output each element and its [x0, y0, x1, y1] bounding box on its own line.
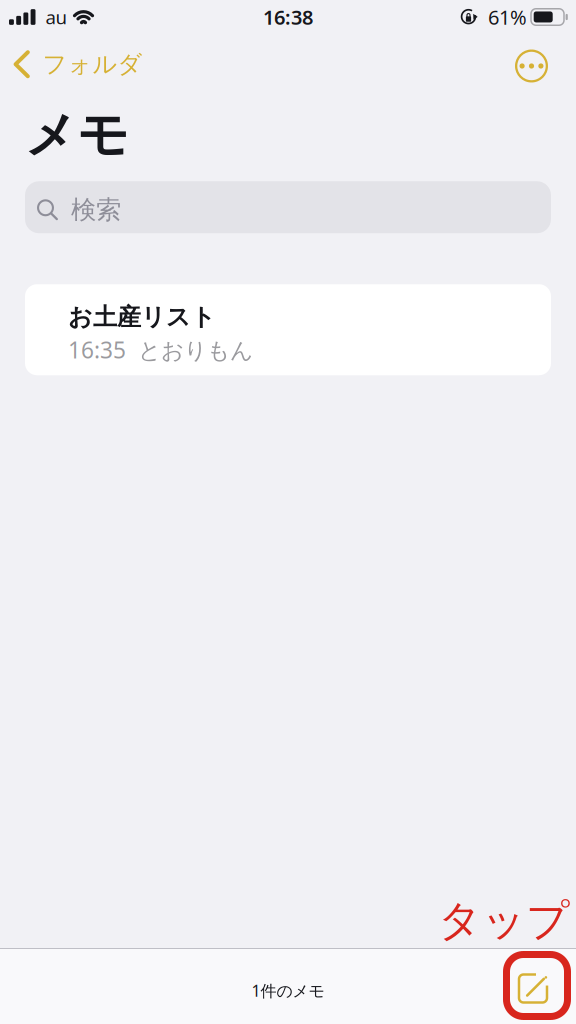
staticText: 16:35 とおりもん	[68, 335, 253, 365]
button[interactable]: その他	[515, 39, 576, 82]
staticText: 61%	[488, 4, 527, 30]
staticText: お土産リスト	[68, 302, 216, 332]
staticText: au	[45, 5, 67, 29]
staticText: 検索	[71, 194, 121, 225]
button[interactable]: 検索	[25, 181, 551, 233]
staticText: タップ	[438, 895, 570, 947]
staticText: メモ	[25, 104, 129, 166]
button[interactable]: 新規メモ	[503, 948, 576, 1020]
staticText: 16:38	[263, 4, 313, 30]
staticText: 1件のメモ	[251, 980, 324, 1001]
button[interactable]: フォルダ	[0, 39, 142, 79]
staticText: フォルダ	[42, 49, 142, 79]
button[interactable]: お土産リスト	[25, 284, 551, 375]
